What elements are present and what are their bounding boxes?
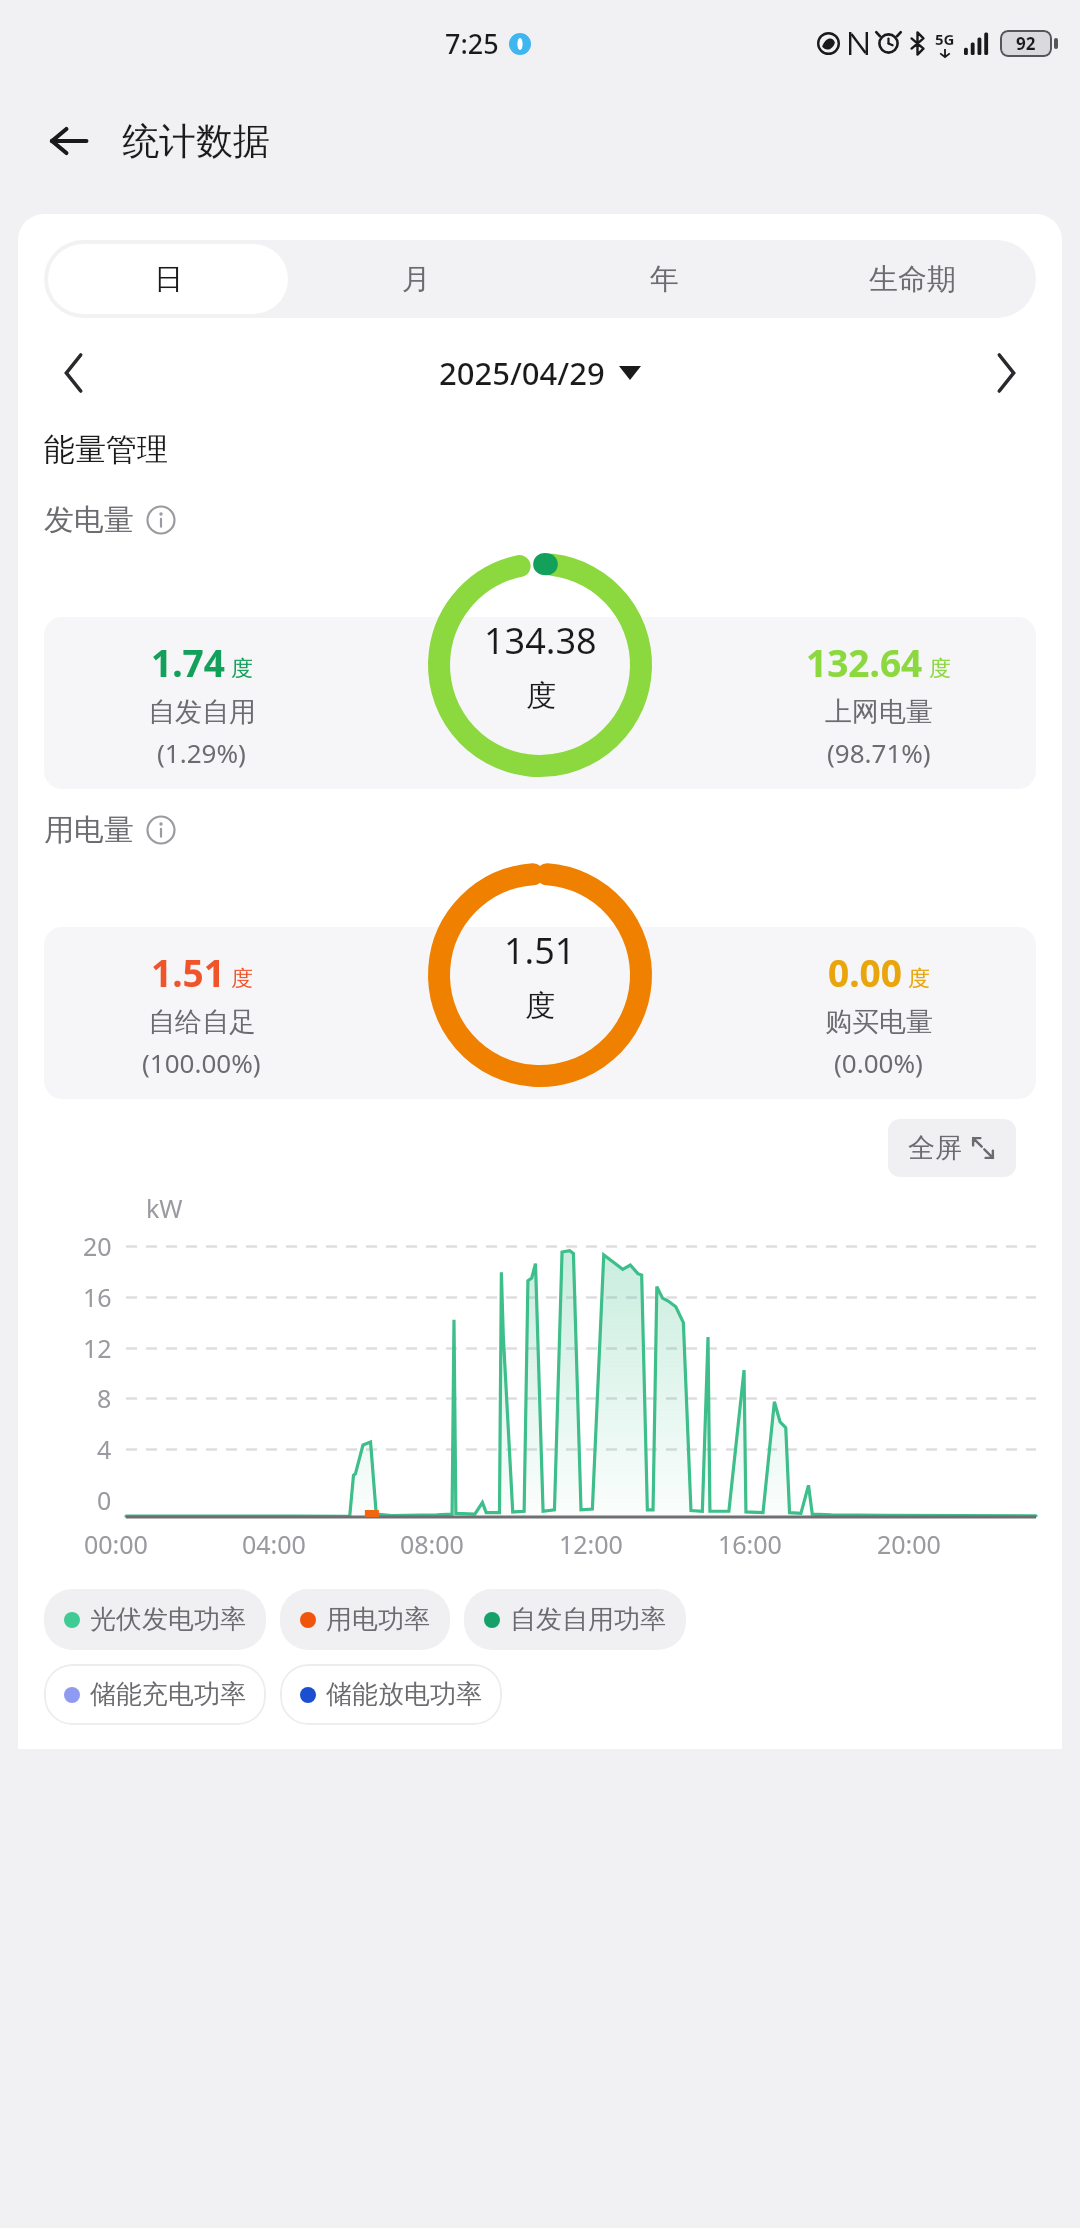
staticText: 12 bbox=[83, 1331, 112, 1365]
staticText: 用电量 bbox=[44, 811, 134, 849]
staticText: 1.51 bbox=[504, 926, 576, 975]
staticText: kW bbox=[146, 1191, 183, 1225]
button[interactable]: Previous day bbox=[44, 344, 102, 402]
staticText: 发电量 bbox=[44, 501, 134, 539]
staticText: 0.00 bbox=[828, 947, 902, 997]
staticText: (1.29%) bbox=[157, 735, 246, 770]
button[interactable]: 2025/04/29 bbox=[102, 352, 978, 394]
button[interactable]: Back bbox=[36, 109, 100, 173]
staticText: 储能放电功率 bbox=[326, 1678, 482, 1711]
staticText: 2025/04/29 bbox=[439, 352, 605, 394]
button[interactable]: 用电功率 bbox=[280, 1589, 450, 1650]
button[interactable]: 光伏发电功率 bbox=[44, 1589, 266, 1650]
staticText: 4 bbox=[97, 1432, 112, 1466]
staticText: 8 bbox=[97, 1381, 112, 1415]
button[interactable]: 日 bbox=[48, 244, 288, 314]
staticText: 度 bbox=[231, 965, 253, 993]
staticText: 1.51 bbox=[151, 947, 225, 997]
button[interactable]: Info bbox=[146, 505, 176, 535]
button[interactable]: 月 bbox=[296, 244, 536, 314]
staticText: 能量管理 bbox=[44, 430, 168, 469]
staticText: 度 bbox=[929, 655, 951, 683]
staticText: (0.00%) bbox=[834, 1045, 923, 1080]
button[interactable]: 储能放电功率 bbox=[280, 1664, 502, 1725]
staticText: 5G bbox=[935, 29, 955, 49]
staticText: 全屏 bbox=[908, 1131, 962, 1165]
staticText: (100.00%) bbox=[142, 1045, 261, 1080]
staticText: 度 bbox=[908, 965, 930, 993]
staticText: 08:00 bbox=[400, 1527, 464, 1561]
staticText: (98.71%) bbox=[827, 735, 931, 770]
staticText: 购买电量 bbox=[825, 1005, 933, 1039]
staticText: 统计数据 bbox=[122, 118, 270, 165]
button[interactable]: Next day bbox=[978, 344, 1036, 402]
staticText: 04:00 bbox=[242, 1527, 306, 1561]
staticText: 自发自用功率 bbox=[510, 1603, 666, 1636]
staticText: 度 bbox=[231, 655, 253, 683]
staticText: 上网电量 bbox=[825, 695, 933, 729]
staticText: 年 bbox=[650, 261, 679, 298]
staticText: 0 bbox=[97, 1483, 112, 1517]
button[interactable]: 全屏 bbox=[888, 1119, 1016, 1177]
button[interactable]: 储能充电功率 bbox=[44, 1664, 266, 1725]
staticText: 20:00 bbox=[877, 1527, 941, 1561]
staticText: 20 bbox=[83, 1229, 112, 1263]
staticText: 用电功率 bbox=[326, 1603, 430, 1636]
staticText: 1.74 bbox=[151, 637, 225, 687]
staticText: 92 bbox=[1016, 32, 1036, 55]
staticText: 日 bbox=[154, 261, 183, 298]
staticText: 7:25 bbox=[445, 25, 499, 62]
staticText: 132.64 bbox=[806, 637, 923, 687]
staticText: 12:00 bbox=[559, 1527, 623, 1561]
staticText: 储能充电功率 bbox=[90, 1678, 246, 1711]
button[interactable]: 年 bbox=[544, 244, 784, 314]
button[interactable]: 生命期 bbox=[792, 244, 1032, 314]
button[interactable]: 自发自用功率 bbox=[464, 1589, 686, 1650]
staticText: 16 bbox=[83, 1280, 112, 1314]
staticText: 光伏发电功率 bbox=[90, 1603, 246, 1636]
staticText: 月 bbox=[402, 261, 431, 298]
staticText: 度 bbox=[525, 987, 555, 1025]
staticText: 134.38 bbox=[484, 616, 597, 665]
staticText: 度 bbox=[526, 677, 556, 715]
staticText: 自给自足 bbox=[148, 1005, 256, 1039]
button[interactable]: Info bbox=[146, 815, 176, 845]
staticText: 00:00 bbox=[84, 1527, 148, 1561]
staticText: 生命期 bbox=[869, 261, 956, 298]
staticText: 自发自用 bbox=[148, 695, 256, 729]
staticText: 16:00 bbox=[718, 1527, 782, 1561]
